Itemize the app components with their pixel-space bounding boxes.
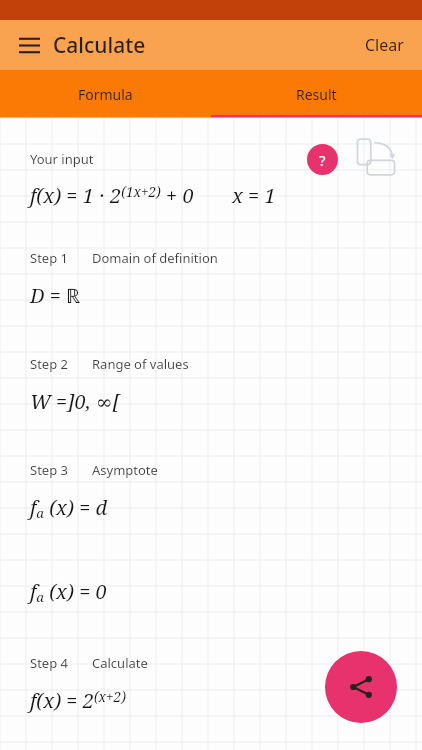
button[interactable]: Open navigation menu xyxy=(8,24,50,66)
button[interactable]: Formula xyxy=(0,70,211,118)
staticText: ? xyxy=(319,150,326,170)
staticText: Your input xyxy=(30,150,94,168)
button[interactable]: Clear xyxy=(347,22,422,68)
staticText: Asymptote xyxy=(92,461,158,479)
staticText: x = 1 xyxy=(232,182,276,209)
staticText: Step 3 xyxy=(30,461,92,479)
staticText: Calculate xyxy=(92,654,148,672)
staticText: Range of values xyxy=(92,355,189,373)
staticText: fa (x) = 0 xyxy=(30,578,107,606)
staticText: Result xyxy=(296,85,337,104)
button[interactable]: Help xyxy=(307,144,338,175)
staticText: Formula xyxy=(78,85,133,104)
staticText: W =]0, ∞[ xyxy=(30,388,120,415)
staticText: D = ℝ xyxy=(30,282,81,309)
staticText: f(x) = 2(x+2) xyxy=(30,687,126,714)
staticText: Step 1 xyxy=(30,249,92,267)
button[interactable]: Result xyxy=(211,70,422,118)
staticText: fa (x) = d xyxy=(30,494,108,522)
staticText: Clear xyxy=(365,34,404,56)
button[interactable]: Share xyxy=(325,651,397,723)
staticText: Step 4 xyxy=(30,654,92,672)
staticText: f(x) = 1 · 2(1x+2) + 0 xyxy=(30,182,194,209)
staticText: Step 2 xyxy=(30,355,92,373)
staticText: Calculate xyxy=(53,31,146,60)
staticText: Domain of definition xyxy=(92,249,218,267)
button[interactable]: Rotate screen xyxy=(350,136,402,182)
